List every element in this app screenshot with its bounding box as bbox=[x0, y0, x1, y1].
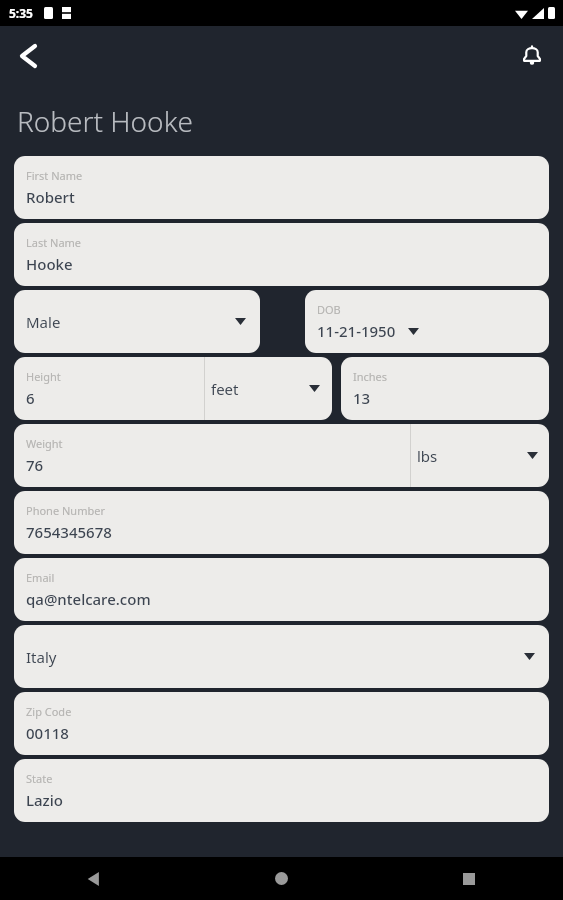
button[interactable]: Weight bbox=[14, 424, 410, 487]
staticText: Inches bbox=[353, 369, 388, 384]
button[interactable]: Male bbox=[14, 290, 260, 353]
staticText: 13 bbox=[353, 388, 371, 408]
staticText: 00118 bbox=[26, 723, 69, 743]
staticText: First Name bbox=[26, 168, 83, 183]
staticText: Phone Number bbox=[26, 503, 105, 518]
staticText: Last Name bbox=[26, 235, 82, 250]
button[interactable]: First Name bbox=[14, 156, 549, 219]
staticText: 11-21-1950 bbox=[317, 321, 396, 341]
staticText: feet bbox=[211, 379, 239, 399]
button[interactable]: lbs bbox=[411, 424, 549, 487]
staticText: Weight bbox=[26, 436, 63, 451]
staticText: 5:35 bbox=[9, 5, 33, 21]
button[interactable]: Back bbox=[0, 857, 187, 900]
button[interactable]: Phone Number bbox=[14, 491, 549, 554]
button[interactable]: State bbox=[14, 759, 549, 822]
button[interactable]: Recent apps bbox=[375, 857, 563, 900]
button[interactable]: Inches bbox=[341, 357, 549, 420]
staticText: Male bbox=[26, 312, 61, 332]
staticText: 6 bbox=[26, 388, 35, 408]
button[interactable]: Notifications bbox=[513, 37, 551, 75]
button[interactable]: Email bbox=[14, 558, 549, 621]
staticText: 76 bbox=[26, 455, 44, 475]
button[interactable]: Italy bbox=[14, 625, 549, 688]
staticText: State bbox=[26, 771, 53, 786]
staticText: DOB bbox=[317, 302, 341, 317]
staticText: Zip Code bbox=[26, 704, 72, 719]
staticText: qa@ntelcare.com bbox=[26, 589, 151, 609]
button[interactable]: Last Name bbox=[14, 223, 549, 286]
button[interactable]: Zip Code bbox=[14, 692, 549, 755]
button[interactable]: feet bbox=[205, 357, 332, 420]
button[interactable]: Back bbox=[10, 38, 46, 74]
staticText: lbs bbox=[417, 446, 438, 466]
button[interactable]: Height bbox=[14, 357, 204, 420]
staticText: Robert Hooke bbox=[17, 102, 193, 140]
staticText: Height bbox=[26, 369, 61, 384]
staticText: Email bbox=[26, 570, 55, 585]
button[interactable]: DOB bbox=[305, 290, 549, 353]
button[interactable]: Home bbox=[187, 857, 375, 900]
staticText: Lazio bbox=[26, 790, 63, 810]
staticText: Robert bbox=[26, 187, 75, 207]
staticText: 7654345678 bbox=[26, 522, 112, 542]
staticText: Italy bbox=[26, 647, 57, 667]
staticText: Hooke bbox=[26, 254, 73, 274]
